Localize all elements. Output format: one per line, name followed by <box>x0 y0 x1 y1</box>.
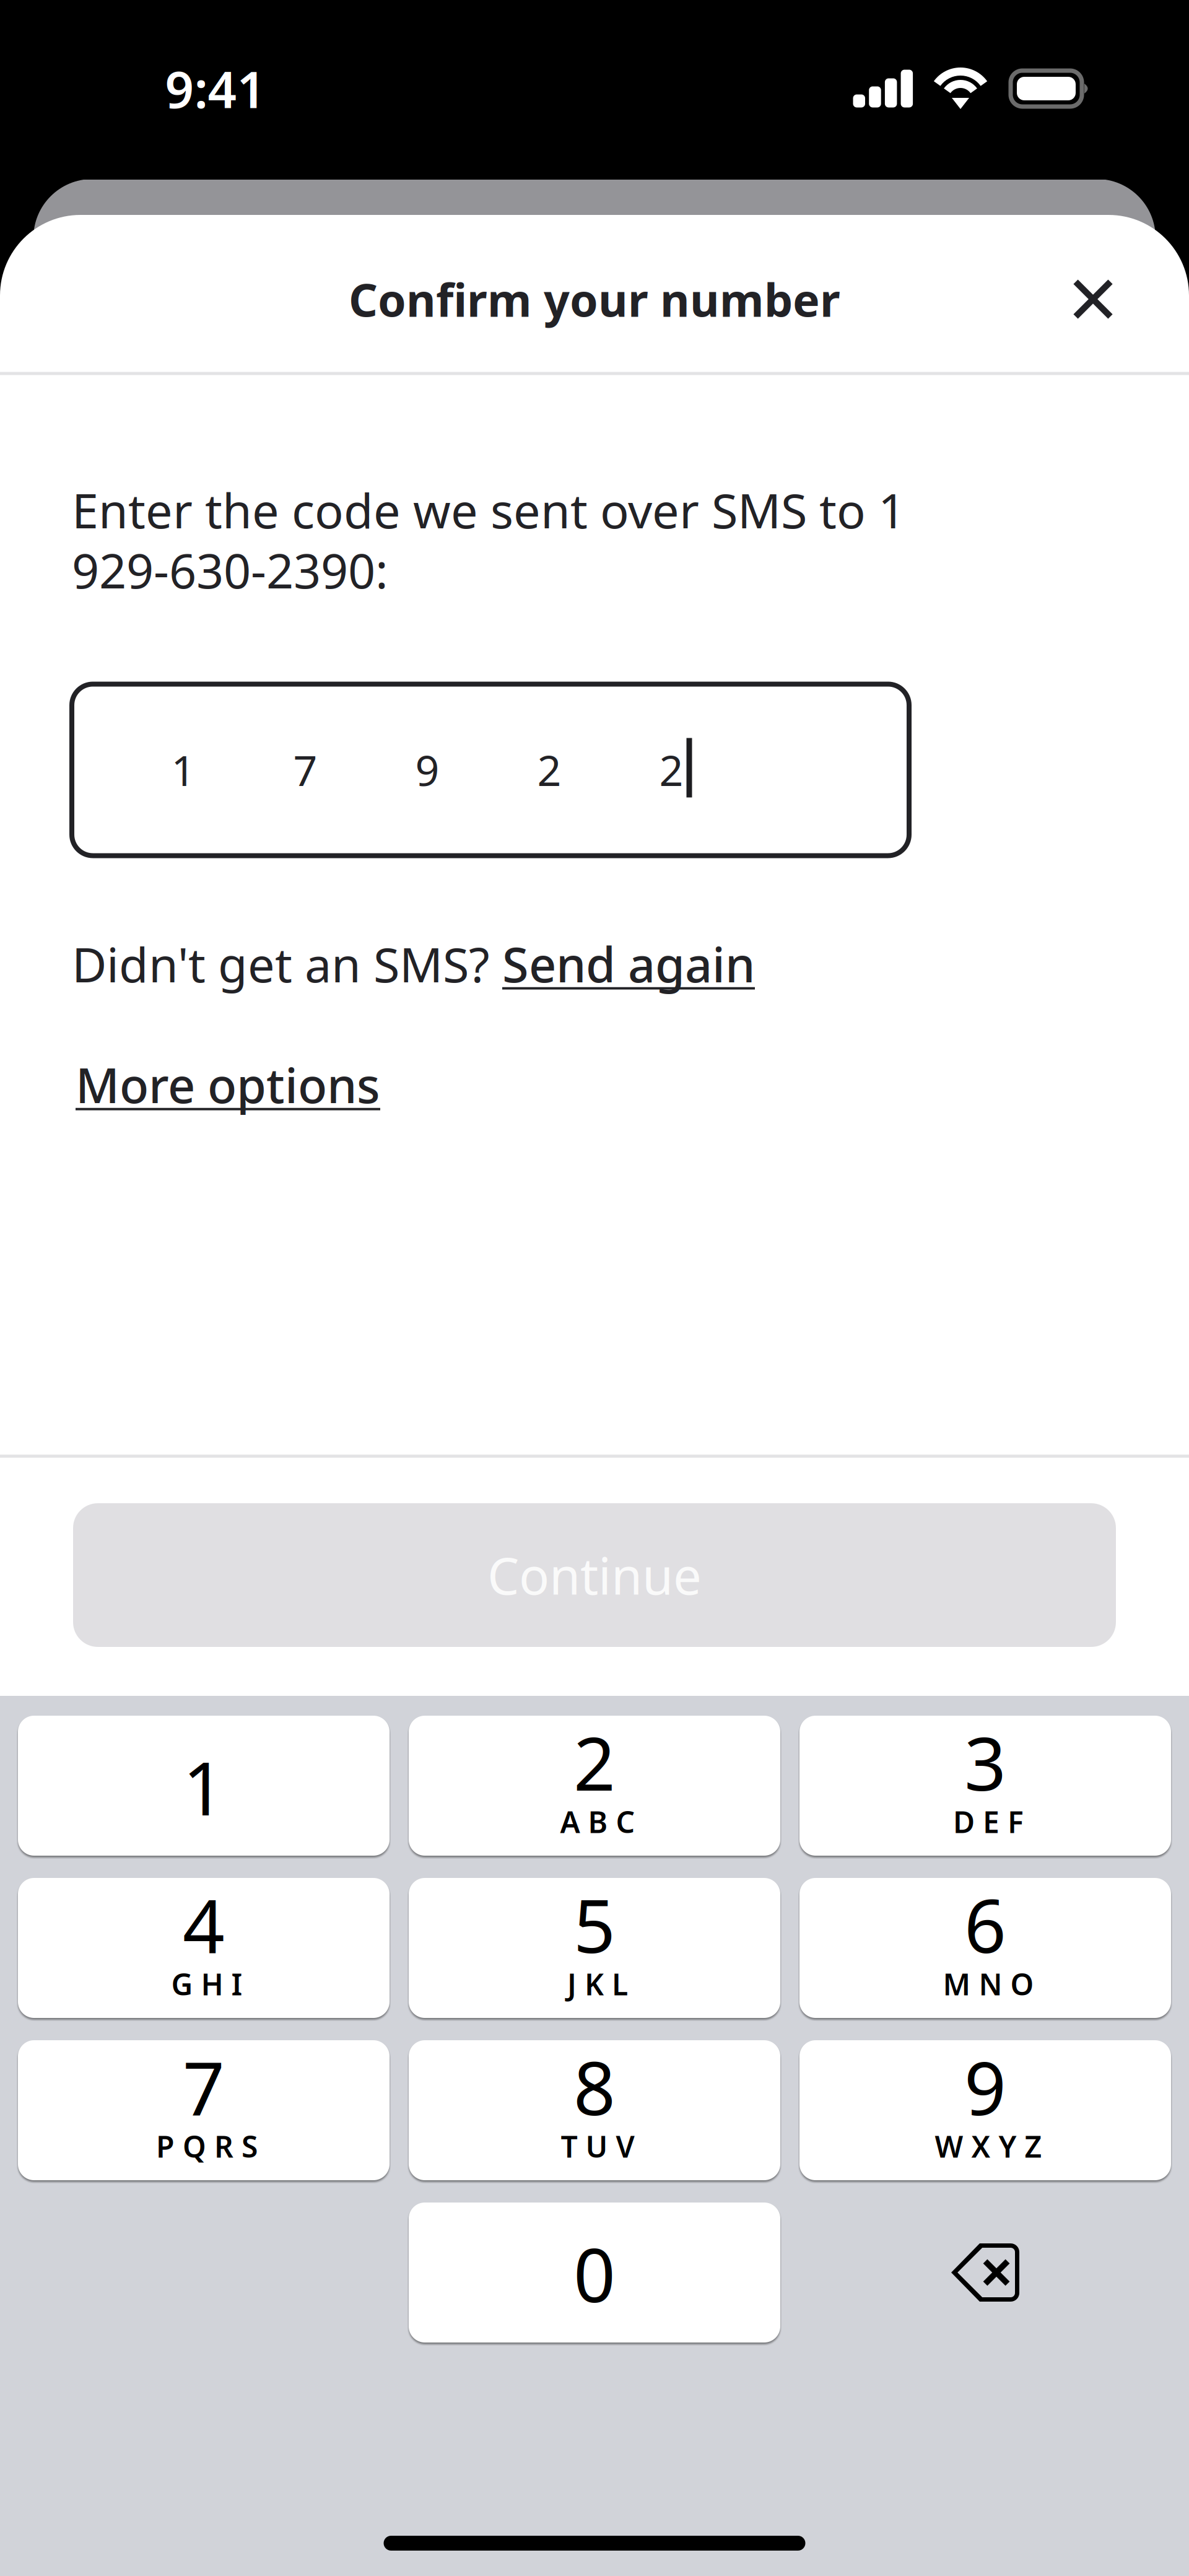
button[interactable]: 2 <box>409 1716 780 1856</box>
staticText: 5 <box>573 1876 616 1973</box>
staticText: 9 <box>415 742 439 798</box>
button[interactable]: 5 <box>409 1878 780 2018</box>
staticText: Continue <box>487 1542 702 1609</box>
staticText: PQRS <box>156 2126 258 2166</box>
button[interactable]: 6 <box>799 1878 1171 2018</box>
staticText: 1 <box>183 1738 225 1836</box>
staticText: More options <box>76 1053 380 1116</box>
button[interactable]: 7 <box>18 2040 390 2180</box>
staticText: MNO <box>943 1964 1034 2004</box>
staticText: 3 <box>964 1713 1006 1811</box>
button[interactable]: 8 <box>409 2040 780 2180</box>
staticText: 2 <box>573 1713 616 1811</box>
staticText: ABC <box>560 1802 635 1841</box>
button[interactable]: 3 <box>799 1716 1171 1856</box>
button[interactable]: 4 <box>18 1878 390 2018</box>
staticText: 0 <box>573 2225 616 2323</box>
staticText: DEF <box>953 1802 1024 1841</box>
staticText: 9:41 <box>165 55 266 122</box>
staticText: Confirm your number <box>349 269 840 329</box>
staticText: 8 <box>573 2038 616 2135</box>
staticText: WXYZ <box>935 2126 1042 2166</box>
staticText: TUV <box>561 2126 634 2166</box>
button[interactable]: 9 <box>799 2040 1171 2180</box>
staticText: 6 <box>964 1876 1006 1973</box>
button[interactable]: Close <box>1047 253 1139 346</box>
button[interactable]: Delete <box>799 2203 1171 2342</box>
staticText: Didn't get an SMS? Send again <box>72 932 755 996</box>
staticText: 1 <box>171 742 195 798</box>
staticText: 4 <box>183 1876 225 1973</box>
staticText: Enter the code we sent over SMS to 1 <box>72 478 905 542</box>
staticText: 929-630-2390: <box>72 538 388 602</box>
button[interactable]: Continue <box>73 1503 1116 1647</box>
staticText: 2 <box>659 742 683 798</box>
button[interactable]: 1 <box>18 1716 390 1856</box>
staticText: 7 <box>183 2038 225 2135</box>
staticText: GHI <box>171 1964 242 2004</box>
staticText: 7 <box>293 742 317 798</box>
staticText: 9 <box>964 2038 1006 2135</box>
staticText: JKL <box>567 1964 628 2004</box>
staticText: 2 <box>537 742 561 798</box>
button[interactable]: 0 <box>409 2203 780 2342</box>
